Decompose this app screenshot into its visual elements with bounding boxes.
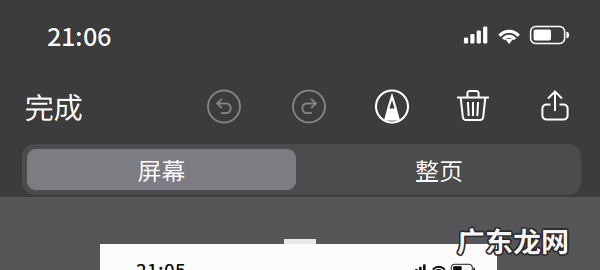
staticText: 广东龙网 <box>457 218 569 259</box>
button[interactable]: Delete <box>452 85 494 127</box>
button[interactable]: Undo <box>204 86 244 126</box>
staticText: 整页 <box>415 152 463 187</box>
staticText: 屏幕 <box>137 152 185 187</box>
staticText: 广东龙网 <box>458 218 570 259</box>
button[interactable]: 完成 <box>0 84 102 128</box>
staticText: 广东龙网 <box>458 221 570 261</box>
staticText: 广东龙网 <box>456 218 568 259</box>
button[interactable]: Redo <box>289 86 329 126</box>
staticText: 完成 <box>24 85 82 127</box>
staticText: 广东龙网 <box>457 220 569 260</box>
staticText: 21:05 <box>136 256 186 270</box>
staticText: 广东龙网 <box>456 221 568 261</box>
button[interactable]: 屏幕 <box>27 149 296 190</box>
staticText: 21:06 <box>47 17 111 53</box>
staticText: 广东龙网 <box>455 220 567 260</box>
button[interactable]: Share <box>534 85 576 127</box>
button[interactable]: Markup <box>372 86 412 126</box>
button[interactable]: 整页 <box>296 149 576 190</box>
staticText: 广东龙网 <box>457 221 569 262</box>
staticText: 广东龙网 <box>459 220 571 260</box>
